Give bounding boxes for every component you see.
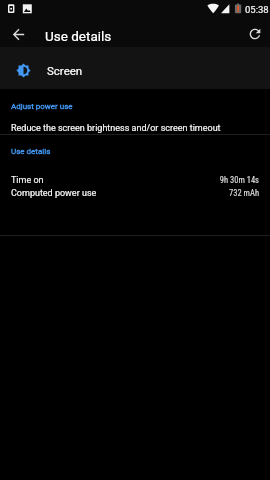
staticText: 732 mAh [98,188,259,198]
button[interactable]: Refresh [237,18,270,47]
button[interactable]: Time on [0,175,270,188]
staticText: Adjust power use [11,102,73,111]
button[interactable] [0,47,270,89]
button[interactable]: Navigate up [2,18,36,47]
staticText: 9h 30m 14s [45,175,259,185]
staticText: Use details [45,28,112,44]
staticText: Time on [11,175,44,186]
button[interactable]: Computed power use [0,188,270,201]
staticText: Use details [11,147,51,156]
staticText: 05:38 [245,4,269,15]
staticText: Screen [47,64,83,77]
staticText: Computed power use [11,188,97,199]
staticText: Reduce the screen brightness and/or scre… [11,123,221,134]
